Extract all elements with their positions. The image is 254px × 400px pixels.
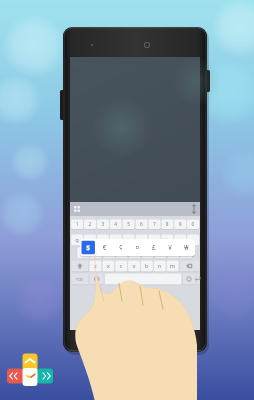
button[interactable]: Keyboard app launcher [6, 352, 54, 400]
button[interactable]: Dollar sign key [81, 240, 98, 255]
button[interactable]: Keyboard apps grid [72, 203, 84, 215]
